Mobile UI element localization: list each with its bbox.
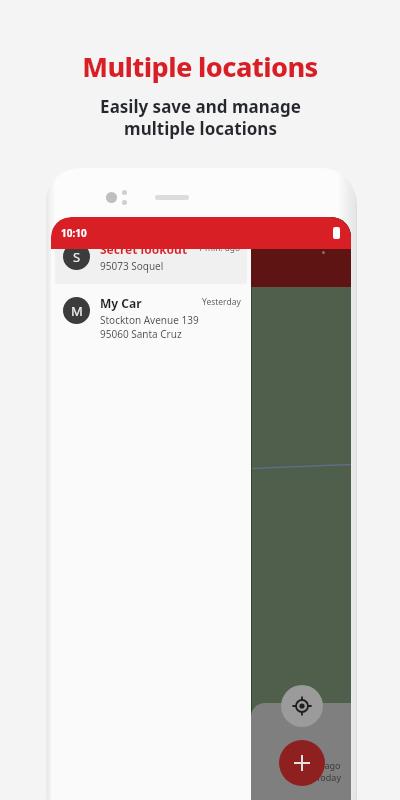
staticText: M	[71, 302, 83, 320]
button[interactable]: More options	[313, 239, 333, 265]
button[interactable]: M	[55, 286, 247, 352]
staticText: 10:10	[61, 226, 87, 240]
staticText: Stockton Avenue 139	[100, 313, 199, 327]
staticText: 95060 Santa Cruz	[100, 327, 182, 341]
staticText: 0 min. ago	[296, 759, 341, 771]
staticText: Yesterday	[202, 296, 241, 308]
staticText: Multiple locations	[82, 48, 318, 85]
button[interactable]: 0 min. ago	[251, 703, 351, 800]
staticText: 1 min. ago	[198, 242, 241, 254]
button[interactable]: My location	[281, 685, 323, 727]
staticText: Easily save and manage multiple location…	[100, 95, 301, 140]
staticText: Today	[316, 771, 341, 783]
button[interactable]: Add location	[279, 740, 325, 786]
staticText: Secret lookout	[100, 241, 188, 257]
staticText: My Car	[100, 295, 142, 311]
staticText: S	[73, 248, 81, 266]
staticText: 95073 Soquel	[100, 259, 164, 273]
button[interactable]: S	[55, 232, 247, 284]
